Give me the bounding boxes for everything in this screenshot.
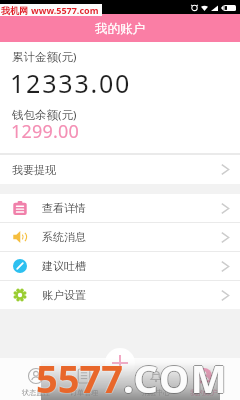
staticText: 5577	[36, 351, 123, 400]
staticText: 我机网	[1, 5, 28, 16]
staticText: 5577	[36, 353, 123, 400]
staticText: 我的账户	[190, 388, 218, 397]
button[interactable]: Add	[105, 348, 135, 378]
staticText: 1299.00	[11, 119, 79, 144]
staticText: 订单管理	[70, 388, 98, 397]
staticText: 系统消息	[42, 230, 86, 244]
staticText: 我的账户	[95, 21, 145, 37]
button[interactable]: 订单管理	[60, 358, 108, 400]
staticText: 钱包余额(元)	[12, 107, 77, 123]
button[interactable]: 查看详情	[0, 194, 240, 222]
button[interactable]: 我的账户	[180, 358, 228, 400]
staticText: 5577	[35, 352, 122, 400]
button[interactable]: 账户设置	[0, 281, 240, 309]
staticText: .COM	[123, 352, 229, 400]
staticText: 12333.00	[10, 66, 132, 100]
staticText: 累计金额(元)	[12, 49, 77, 65]
staticText: 查看详情	[42, 201, 86, 215]
button[interactable]: 系统消息	[0, 223, 240, 251]
staticText: 我要提现	[12, 163, 56, 177]
staticText: 5577	[37, 352, 124, 400]
staticText: .COM	[123, 353, 229, 400]
button[interactable]: 建议吐槽	[0, 252, 240, 280]
staticText: www.5577.com	[31, 4, 99, 16]
staticText: 消息中心	[142, 388, 170, 397]
button[interactable]: 状态监控	[12, 358, 60, 400]
staticText: 状态监控	[22, 388, 50, 397]
button[interactable]: 我要提现	[0, 155, 240, 184]
button[interactable]: 消息中心	[132, 358, 180, 400]
staticText: 5577	[36, 352, 123, 400]
staticText: 建议吐槽	[42, 259, 86, 273]
staticText: .COM	[124, 352, 230, 400]
staticText: .COM	[123, 351, 229, 400]
staticText: 账户设置	[42, 288, 86, 302]
staticText: .COM	[122, 352, 228, 400]
